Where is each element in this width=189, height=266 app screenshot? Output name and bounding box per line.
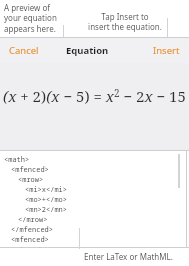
staticText: A preview of your equation appears here. (4, 2, 57, 35)
staticText: <mi>x</mi> (25, 185, 67, 195)
staticText: <mfenced> (11, 165, 49, 175)
staticText: <math> (4, 155, 30, 165)
staticText: <mn>2</mn> (25, 205, 67, 215)
staticText: Enter LaTex or MathML. (84, 251, 173, 262)
button[interactable]: Cancel (0, 37, 60, 63)
staticText: </mfenced> (11, 225, 53, 235)
button[interactable]: <math> (0, 150, 189, 248)
staticText: <mo>+</mo> (25, 195, 67, 205)
staticText: Equation (66, 44, 109, 57)
staticText: Tap Insert to insert the equation. (88, 11, 162, 33)
button[interactable]: Insert (129, 37, 189, 63)
staticText: <mfenced> (11, 235, 49, 245)
staticText: Cancel (9, 44, 39, 57)
staticText: Insert (153, 44, 180, 57)
staticText: (x + 2)(x − 5) = x2 − 2x − 15 (3, 86, 186, 106)
staticText: <mrow> (18, 175, 44, 185)
staticText: </mrow> (18, 215, 48, 225)
staticText: <mrow> (18, 245, 44, 248)
button[interactable]: (x + 2)(x − 5) = x2 − 2x − 15 (0, 63, 189, 150)
